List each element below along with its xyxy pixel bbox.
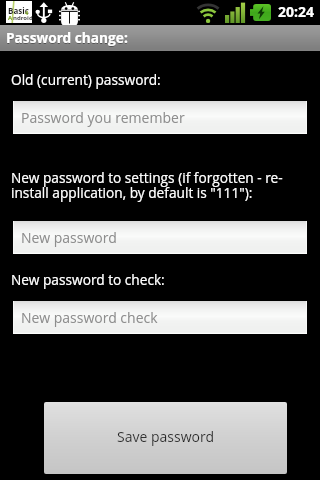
button[interactable]: Password you remember: [13, 101, 307, 134]
button[interactable]: Save password: [44, 402, 287, 474]
staticText: Save password: [117, 427, 215, 446]
staticText: New password to settings (if forgotten -…: [11, 168, 310, 202]
staticText: A: [8, 14, 13, 22]
button[interactable]: New password: [13, 221, 307, 254]
other: USB connected: [36, 2, 53, 23]
staticText: New password to check:: [11, 270, 310, 289]
staticText: Password change:: [6, 29, 128, 48]
staticText: Password change:: [6, 28, 128, 47]
staticText: New password: [21, 228, 117, 247]
staticText: Password you remember: [21, 108, 185, 127]
staticText: New password check: [21, 308, 158, 327]
staticText: 4: [25, 9, 29, 16]
staticText: 20:24: [278, 2, 314, 21]
other: USB debugging: [59, 1, 80, 24]
other: Battery charging: [250, 4, 271, 21]
staticText: ndroid: [13, 14, 33, 22]
button[interactable]: New password check: [13, 301, 307, 334]
staticText: Basic: [8, 5, 29, 16]
staticText: Old (current) password:: [11, 70, 310, 89]
